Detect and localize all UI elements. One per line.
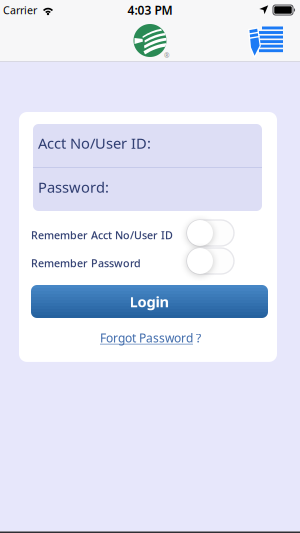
staticText: 4:03 PM <box>127 2 172 18</box>
staticText: Forgot Password <box>100 330 193 346</box>
staticText: Login <box>129 292 169 311</box>
button[interactable]: Remember Password <box>19 248 277 274</box>
staticText: Remember Password <box>31 256 141 270</box>
button[interactable]: Home <box>131 22 169 58</box>
button[interactable]: Login <box>31 285 268 318</box>
staticText: ® <box>164 51 170 60</box>
button[interactable]: Forgot Password <box>100 330 201 346</box>
staticText: Carrier <box>3 3 37 17</box>
button[interactable]: Acct No/User ID <box>33 124 262 167</box>
staticText: Remember Acct No/User ID <box>31 228 173 242</box>
button[interactable]: Remember Acct No/User ID <box>19 220 277 246</box>
button[interactable]: Report service issue <box>248 26 300 54</box>
staticText: Acct No/User ID: <box>38 133 151 153</box>
button[interactable]: Password <box>33 168 262 211</box>
staticText: Password: <box>38 177 109 197</box>
staticText: ? <box>196 330 201 346</box>
